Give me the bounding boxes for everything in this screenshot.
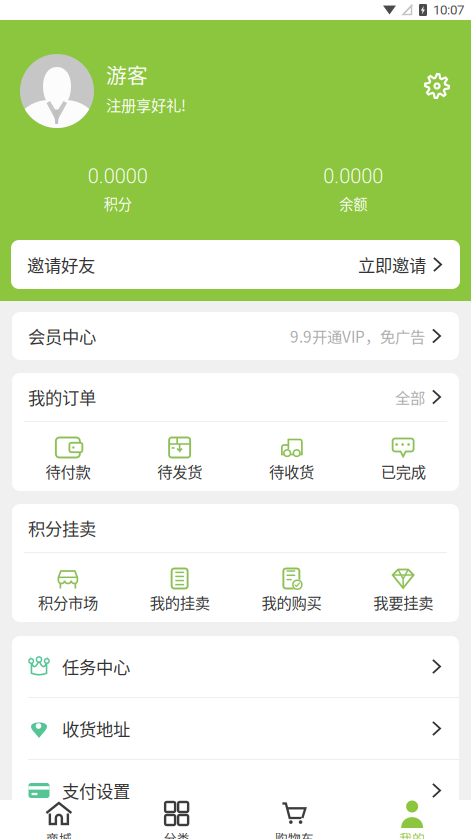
staticText: 9.9开通VIP，免广告 — [290, 325, 425, 347]
button[interactable]: 设置 — [416, 65, 458, 107]
staticText: 全部 — [395, 386, 425, 408]
staticText: 立即邀请 — [358, 252, 426, 277]
staticText: 注册享好礼! — [106, 93, 186, 116]
button[interactable]: 我的购买 — [235, 568, 347, 610]
staticText: 我的订单 — [28, 384, 96, 410]
button[interactable]: 我的订单 — [12, 373, 459, 421]
button[interactable]: 我的 — [353, 800, 471, 839]
button[interactable]: 邀请好友 — [0, 240, 471, 289]
staticText: 待发货 — [157, 460, 202, 482]
staticText: 0.0000 — [88, 165, 148, 188]
staticText: 10:07 — [433, 2, 464, 18]
staticText: 余额 — [339, 193, 367, 214]
staticText: 支付设置 — [62, 778, 130, 803]
button[interactable]: 积分市场 — [12, 568, 124, 610]
button[interactable]: 会员中心 — [0, 312, 471, 360]
staticText: 商城 — [46, 829, 72, 839]
staticText: 收货地址 — [62, 716, 130, 741]
button[interactable]: 收货地址 — [12, 698, 459, 759]
staticText: 我的购买 — [261, 591, 321, 613]
staticText: 购物车 — [275, 829, 314, 839]
button[interactable]: 待发货 — [124, 437, 236, 479]
button[interactable]: 我要挂卖 — [347, 568, 459, 610]
staticText: 邀请好友 — [27, 252, 95, 277]
staticText: 会员中心 — [28, 323, 96, 349]
staticText: 分类 — [164, 829, 190, 839]
button[interactable]: 待收货 — [235, 437, 347, 479]
button[interactable]: 我的挂卖 — [124, 568, 236, 610]
button[interactable]: 任务中心 — [12, 636, 459, 697]
staticText: 我的 — [399, 829, 425, 839]
button[interactable]: 商城 — [0, 800, 118, 839]
staticText: 待付款 — [45, 460, 90, 482]
button[interactable]: 支付设置 — [12, 760, 459, 821]
staticText: 我要挂卖 — [373, 591, 433, 613]
staticText: 积分挂卖 — [28, 515, 96, 541]
staticText: 我的挂卖 — [150, 591, 210, 613]
button[interactable]: 购物车 — [235, 800, 353, 839]
button[interactable]: 待付款 — [12, 437, 124, 479]
staticText: 待收货 — [269, 460, 314, 482]
button[interactable]: 分类 — [118, 800, 236, 839]
staticText: 任务中心 — [62, 654, 130, 679]
staticText: 积分 — [104, 193, 132, 214]
button[interactable]: 已完成 — [347, 437, 459, 479]
staticText: 0.0000 — [323, 165, 383, 188]
staticText: 已完成 — [381, 460, 426, 482]
staticText: 积分市场 — [38, 591, 98, 613]
staticText: 游客 — [106, 59, 148, 89]
